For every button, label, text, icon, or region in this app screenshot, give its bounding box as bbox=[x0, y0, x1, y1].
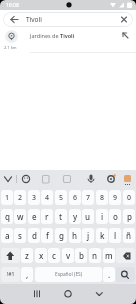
staticText: 10:08 bbox=[6, 2, 19, 9]
button[interactable]: u bbox=[82, 209, 94, 224]
button[interactable]: j bbox=[82, 228, 94, 243]
button[interactable]: m bbox=[103, 248, 115, 263]
button[interactable]: r bbox=[41, 209, 53, 224]
staticText: . bbox=[108, 269, 111, 280]
button[interactable]: 9 bbox=[109, 190, 121, 205]
staticText: d bbox=[32, 230, 37, 241]
staticText: f bbox=[46, 230, 49, 241]
button[interactable] bbox=[56, 284, 80, 304]
button[interactable]: 5 bbox=[55, 190, 67, 205]
button[interactable]: 4 bbox=[41, 190, 53, 205]
button[interactable]: 6 bbox=[69, 190, 81, 205]
button[interactable]: , bbox=[21, 267, 33, 282]
button[interactable]: q bbox=[1, 209, 13, 224]
button[interactable]: t bbox=[55, 209, 67, 224]
staticText: y bbox=[73, 211, 78, 222]
staticText: 2.1 km bbox=[4, 45, 17, 50]
button[interactable]: 0 bbox=[123, 190, 135, 205]
staticText: ñ bbox=[126, 230, 132, 241]
button[interactable]: Español (ES) bbox=[35, 267, 102, 282]
button[interactable]: k bbox=[96, 228, 108, 243]
staticText: 8 bbox=[100, 193, 105, 203]
button[interactable]: Jardines de Tivoli bbox=[0, 28, 136, 52]
button[interactable]: ñ bbox=[123, 228, 135, 243]
staticText: b bbox=[79, 250, 84, 261]
button[interactable]: 3 bbox=[28, 190, 40, 205]
staticText: 6 bbox=[73, 193, 78, 203]
button[interactable]: o bbox=[109, 209, 121, 224]
staticText: 4 bbox=[45, 193, 50, 203]
button[interactable]: 8 bbox=[96, 190, 108, 205]
staticText: 1 bbox=[5, 193, 10, 203]
staticText: m bbox=[105, 250, 113, 261]
staticText: u bbox=[85, 211, 91, 222]
button[interactable]: v bbox=[62, 248, 74, 263]
button[interactable]: 1 bbox=[1, 190, 13, 205]
staticText: h bbox=[72, 230, 78, 241]
staticText: z bbox=[25, 250, 29, 261]
button[interactable]: c bbox=[48, 248, 60, 263]
button[interactable]: l bbox=[109, 228, 121, 243]
staticText: t bbox=[59, 211, 63, 222]
staticText: v bbox=[66, 250, 71, 261]
staticText: k bbox=[100, 230, 105, 241]
button[interactable] bbox=[1, 248, 20, 263]
button[interactable]: f bbox=[41, 228, 53, 243]
staticText: a bbox=[5, 230, 10, 241]
staticText: c bbox=[52, 250, 56, 261]
staticText: Español (ES) bbox=[55, 271, 83, 278]
staticText: 5 bbox=[59, 193, 64, 203]
staticText: w bbox=[17, 211, 24, 222]
button[interactable]: n bbox=[89, 248, 101, 263]
button[interactable]: 7 bbox=[82, 190, 94, 205]
button[interactable]: Tivoli bbox=[3, 12, 133, 27]
button[interactable]: x bbox=[35, 248, 47, 263]
button[interactable]: z bbox=[21, 248, 33, 263]
button[interactable]: h bbox=[69, 228, 81, 243]
staticText: o bbox=[113, 211, 118, 222]
staticText: x bbox=[39, 250, 44, 261]
staticText: , bbox=[26, 269, 29, 280]
button[interactable]: p bbox=[123, 209, 135, 224]
button[interactable]: e bbox=[28, 209, 40, 224]
staticText: !#1 bbox=[7, 271, 15, 278]
staticText: j bbox=[87, 230, 90, 241]
staticText: i bbox=[101, 211, 104, 222]
button[interactable]: i bbox=[96, 209, 108, 224]
button[interactable]: g bbox=[55, 228, 67, 243]
button[interactable]: b bbox=[75, 248, 87, 263]
staticText: 7 bbox=[86, 193, 91, 203]
staticText: g bbox=[59, 230, 64, 241]
staticText: e bbox=[32, 211, 37, 222]
staticText: r bbox=[45, 211, 49, 222]
button[interactable]: 2 bbox=[14, 190, 26, 205]
staticText: Jardines de Tivoli bbox=[30, 32, 75, 39]
staticText: p bbox=[127, 211, 132, 222]
button[interactable]: y bbox=[69, 209, 81, 224]
staticText: s bbox=[18, 230, 22, 241]
button[interactable]: s bbox=[14, 228, 26, 243]
button[interactable] bbox=[87, 284, 111, 304]
staticText: 9 bbox=[113, 193, 118, 203]
staticText: q bbox=[5, 211, 10, 222]
button[interactable]: a bbox=[1, 228, 13, 243]
button[interactable]: d bbox=[28, 228, 40, 243]
button[interactable]: . bbox=[103, 267, 115, 282]
staticText: 3 bbox=[32, 193, 37, 203]
button[interactable] bbox=[116, 267, 135, 282]
button[interactable]: !#1 bbox=[1, 267, 20, 282]
button[interactable] bbox=[26, 284, 50, 304]
button[interactable] bbox=[116, 248, 135, 263]
staticText: 2 bbox=[18, 193, 23, 203]
staticText: Tivoli bbox=[26, 15, 42, 24]
staticText: l bbox=[114, 230, 117, 241]
button[interactable]: w bbox=[14, 209, 26, 224]
staticText: n bbox=[92, 250, 98, 261]
staticText: 0 bbox=[127, 193, 132, 203]
